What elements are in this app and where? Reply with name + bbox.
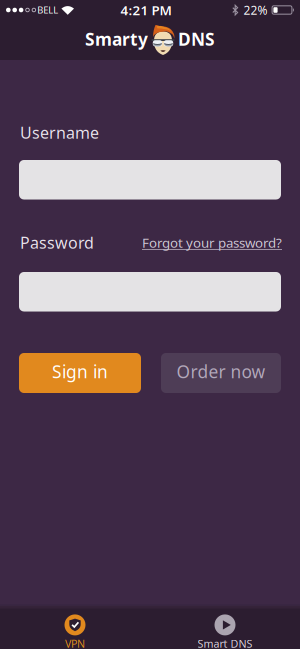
button[interactable]: Username <box>19 160 281 199</box>
staticText: Username <box>20 122 99 143</box>
button[interactable]: Smart DNS <box>150 609 300 649</box>
button[interactable]: Order now <box>161 353 281 393</box>
staticText: Order now <box>176 360 265 383</box>
staticText: Smarty <box>85 27 148 50</box>
staticText: BELL <box>37 4 58 16</box>
staticText: 22% <box>243 2 267 18</box>
staticText: DNS <box>178 27 215 50</box>
staticText: Password <box>20 232 94 253</box>
button[interactable]: Sign in <box>19 353 141 393</box>
staticText: VPN <box>65 636 85 649</box>
staticText: Forgot your password? <box>142 234 282 251</box>
button[interactable]: VPN <box>0 609 150 649</box>
staticText: Smart DNS <box>197 636 252 649</box>
staticText: 4:21 PM <box>120 1 171 19</box>
staticText: Sign in <box>52 360 108 383</box>
button[interactable]: Password <box>19 272 281 311</box>
button[interactable]: Forgot your password? <box>142 234 282 251</box>
